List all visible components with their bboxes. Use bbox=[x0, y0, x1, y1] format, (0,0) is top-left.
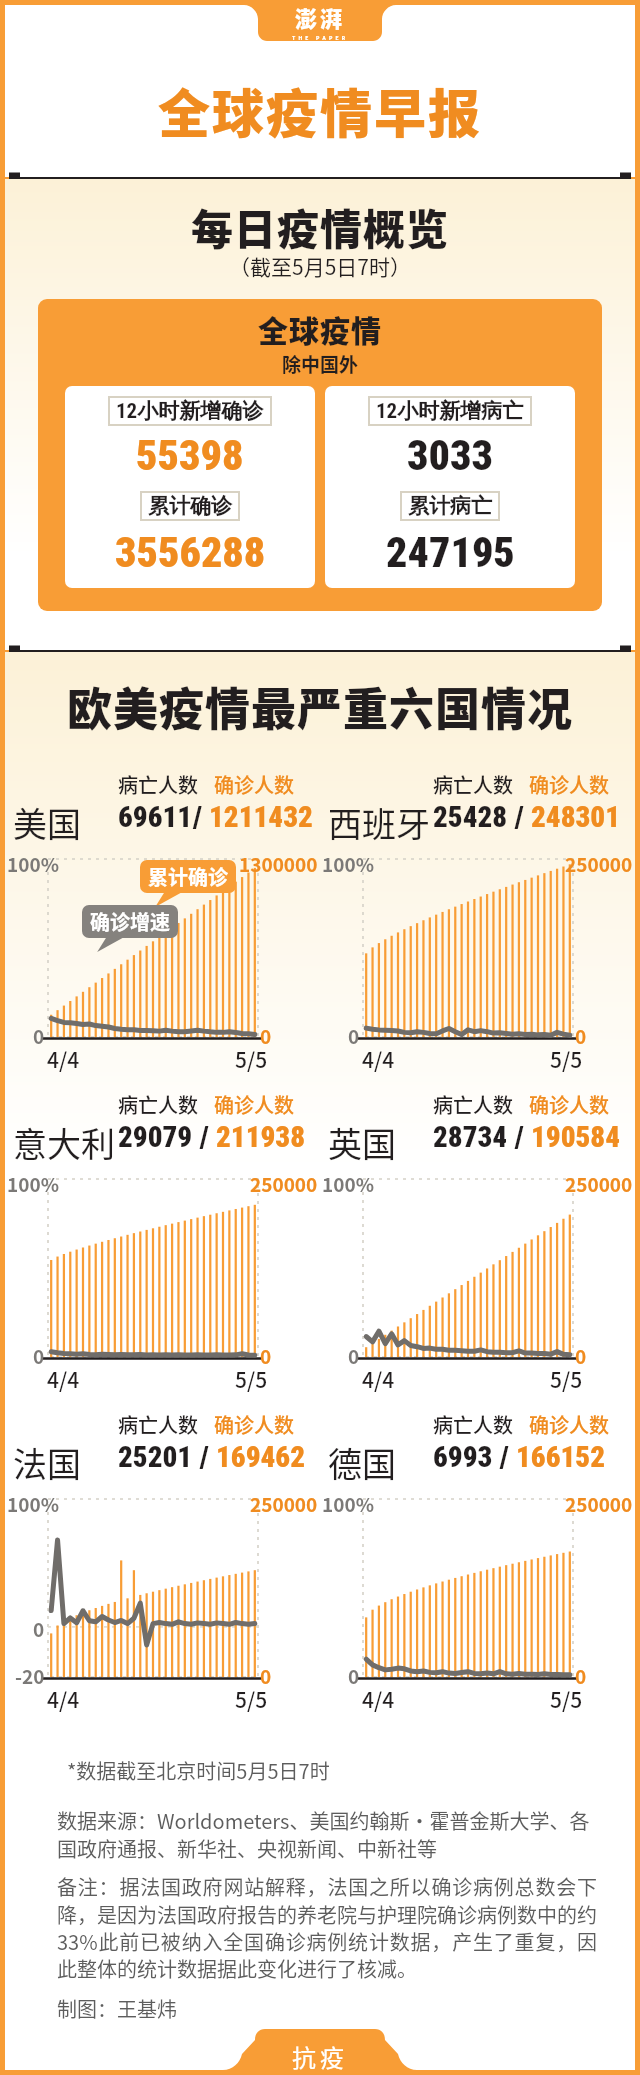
staticText: 4/4 bbox=[47, 1364, 80, 1394]
staticText: 累计确诊 bbox=[148, 862, 228, 891]
staticText: 250000 bbox=[565, 850, 633, 878]
staticText: 0 bbox=[575, 1662, 587, 1690]
staticText: / bbox=[193, 1440, 216, 1474]
staticText: 4/4 bbox=[47, 1684, 80, 1714]
staticText: 1211432 bbox=[209, 800, 313, 834]
staticText: 0 bbox=[260, 1022, 272, 1050]
staticText: 4/4 bbox=[362, 1684, 395, 1714]
staticText: 每日疫情概览 bbox=[5, 196, 635, 257]
staticText: 意大利 bbox=[13, 1118, 115, 1167]
staticText: 25201 bbox=[118, 1440, 193, 1474]
staticText: 确诊人数 bbox=[214, 1090, 294, 1119]
staticText: 5/5 bbox=[235, 1684, 268, 1714]
staticText: 制图：王基炜 bbox=[57, 1994, 177, 2023]
staticText: 病亡人数 bbox=[118, 770, 198, 799]
staticText: 0 bbox=[33, 1615, 45, 1643]
staticText: 4/4 bbox=[362, 1364, 395, 1394]
staticText: 250000 bbox=[565, 1490, 633, 1518]
staticText: / bbox=[508, 1120, 531, 1154]
staticText: 12小时新增确诊 bbox=[116, 398, 264, 424]
staticText: 全球疫情早报 bbox=[5, 73, 635, 148]
staticText: 248301 bbox=[531, 800, 620, 834]
staticText: 德国 bbox=[328, 1438, 396, 1487]
staticText: 5/5 bbox=[550, 1684, 583, 1714]
button[interactable]: 12小时新增病亡 bbox=[325, 386, 575, 588]
staticText: 4/4 bbox=[362, 1044, 395, 1074]
staticText: *数据截至北京时间5月5日7时 bbox=[67, 1756, 330, 1785]
staticText: 确诊人数 bbox=[529, 1410, 609, 1439]
staticText: 确诊人数 bbox=[214, 770, 294, 799]
staticText: 澎湃 bbox=[295, 1, 346, 33]
staticText: 0 bbox=[575, 1022, 587, 1050]
staticText: 3033 bbox=[407, 431, 493, 480]
staticText: / bbox=[493, 1440, 516, 1474]
staticText: 确诊人数 bbox=[214, 1410, 294, 1439]
staticText: 211938 bbox=[216, 1120, 305, 1154]
staticText: 病亡人数 bbox=[433, 1410, 513, 1439]
staticText: 确诊人数 bbox=[529, 770, 609, 799]
staticText: 0 bbox=[260, 1342, 272, 1370]
staticText: 100% bbox=[322, 850, 374, 878]
staticText: （截至5月5日7时） bbox=[5, 251, 635, 281]
staticText: 100% bbox=[322, 1170, 374, 1198]
staticText: 100% bbox=[7, 1490, 59, 1518]
staticText: 69611 bbox=[118, 800, 193, 834]
staticText: 5/5 bbox=[550, 1044, 583, 1074]
button[interactable]: 全球疫情 bbox=[38, 299, 602, 611]
staticText: -20 bbox=[15, 1662, 45, 1690]
staticText: 英国 bbox=[328, 1118, 396, 1167]
staticText: 0 bbox=[33, 1342, 45, 1370]
staticText: 确诊人数 bbox=[529, 1090, 609, 1119]
staticText: 累计病亡 bbox=[408, 493, 492, 519]
staticText: 病亡人数 bbox=[118, 1410, 198, 1439]
staticText: 100% bbox=[7, 1170, 59, 1198]
staticText: 确诊增速 bbox=[90, 907, 170, 936]
staticText: 备注：据法国政府网站解释，法国之所以确诊病例总数会下降，是因为法国政府报告的养老… bbox=[57, 1872, 597, 1982]
staticText: 3556288 bbox=[115, 528, 266, 577]
staticText: 除中国外 bbox=[38, 350, 602, 378]
staticText: / bbox=[508, 800, 531, 834]
staticText: 250000 bbox=[250, 1490, 318, 1518]
staticText: 4/4 bbox=[47, 1044, 80, 1074]
button[interactable]: The Paper logo bbox=[210, 0, 430, 41]
staticText: / bbox=[193, 800, 209, 834]
staticText: THE PAPER bbox=[292, 34, 349, 41]
staticText: 25428 bbox=[433, 800, 508, 834]
staticText: 法国 bbox=[13, 1438, 81, 1487]
staticText: 病亡人数 bbox=[433, 770, 513, 799]
staticText: 6993 bbox=[433, 1440, 493, 1474]
staticText: 55398 bbox=[136, 431, 244, 480]
staticText: 0 bbox=[575, 1342, 587, 1370]
staticText: / bbox=[193, 1120, 216, 1154]
staticText: 12小时新增病亡 bbox=[376, 398, 524, 424]
button[interactable]: 12小时新增确诊 bbox=[65, 386, 315, 588]
staticText: 全球疫情 bbox=[38, 307, 602, 350]
staticText: 数据来源：Worldometers、美国约翰斯·霍普金斯大学、各国政府通报、新华… bbox=[57, 1806, 597, 1862]
staticText: 250000 bbox=[250, 1170, 318, 1198]
staticText: 0 bbox=[260, 1662, 272, 1690]
staticText: 247195 bbox=[386, 528, 515, 577]
staticText: 病亡人数 bbox=[118, 1090, 198, 1119]
staticText: 0 bbox=[348, 1022, 360, 1050]
staticText: 5/5 bbox=[235, 1364, 268, 1394]
staticText: 美国 bbox=[13, 798, 81, 847]
staticText: 250000 bbox=[565, 1170, 633, 1198]
staticText: 29079 bbox=[118, 1120, 193, 1154]
staticText: 0 bbox=[348, 1342, 360, 1370]
staticText: 100% bbox=[7, 850, 59, 878]
staticText: 100% bbox=[322, 1490, 374, 1518]
staticText: 28734 bbox=[433, 1120, 508, 1154]
staticText: 累计确诊 bbox=[148, 493, 232, 519]
staticText: 欧美疫情最严重六国情况 bbox=[5, 674, 635, 739]
staticText: 5/5 bbox=[235, 1044, 268, 1074]
staticText: 抗疫 bbox=[292, 2039, 348, 2074]
staticText: 西班牙 bbox=[328, 798, 430, 847]
staticText: 169462 bbox=[216, 1440, 305, 1474]
staticText: 病亡人数 bbox=[433, 1090, 513, 1119]
staticText: 166152 bbox=[516, 1440, 605, 1474]
staticText: 0 bbox=[348, 1662, 360, 1690]
staticText: 5/5 bbox=[550, 1364, 583, 1394]
staticText: 0 bbox=[33, 1022, 45, 1050]
staticText: 1300000 bbox=[239, 850, 318, 878]
staticText: 190584 bbox=[531, 1120, 620, 1154]
